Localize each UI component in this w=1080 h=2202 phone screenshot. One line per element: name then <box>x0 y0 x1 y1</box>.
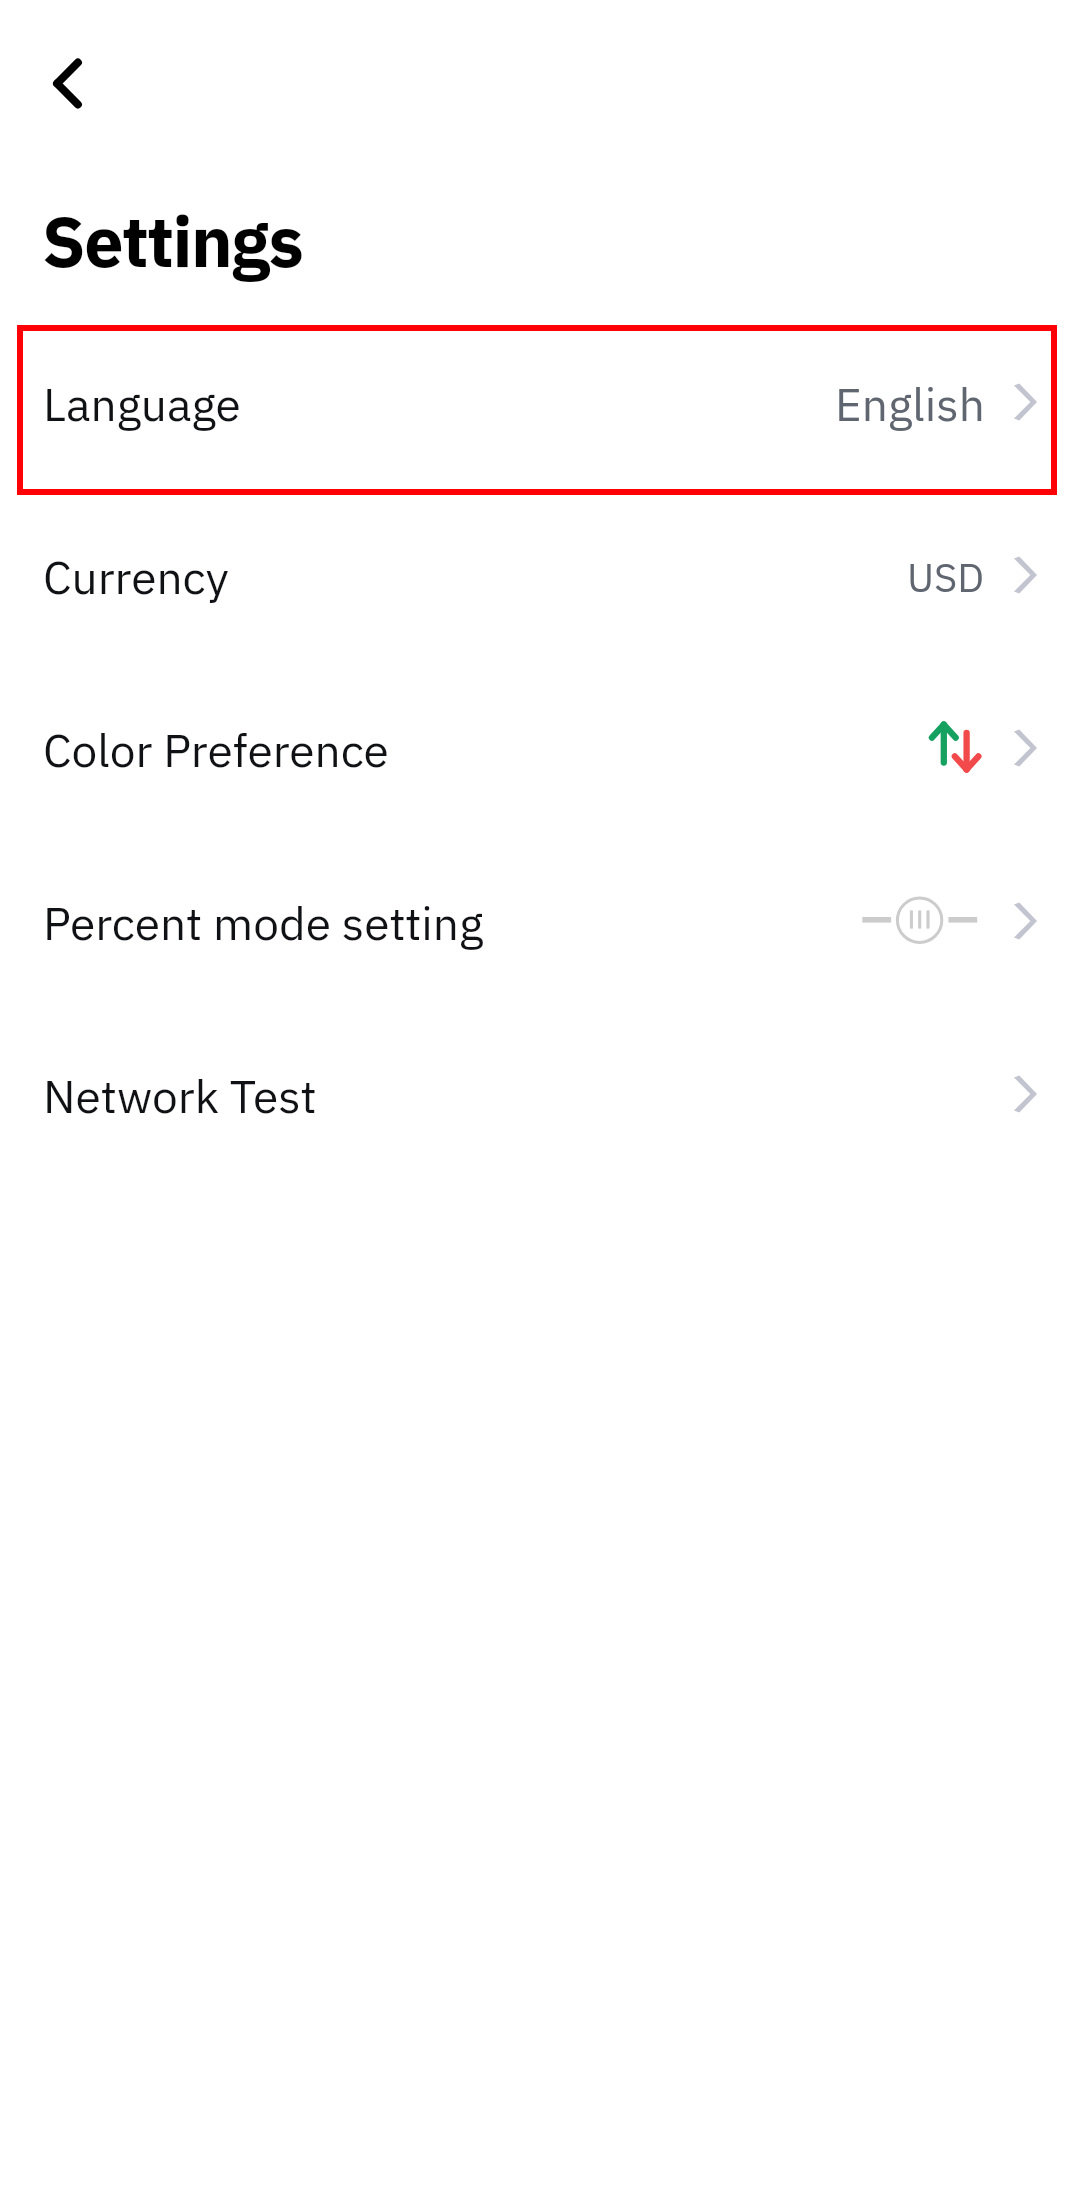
staticText: English <box>835 374 985 434</box>
button[interactable]: Percent mode setting <box>0 836 1080 1009</box>
button[interactable]: Network Test <box>0 1009 1080 1182</box>
staticText: Network Test <box>43 1066 317 1126</box>
staticText: USD <box>907 551 985 603</box>
staticText: Currency <box>43 547 229 607</box>
staticText: Color Preference <box>43 720 389 780</box>
button[interactable]: Color Preference <box>0 663 1080 836</box>
button[interactable]: Currency <box>0 490 1080 663</box>
button[interactable]: Back <box>21 37 114 130</box>
staticText: Settings <box>42 195 303 286</box>
button[interactable]: Language <box>0 317 1080 490</box>
staticText: Language <box>43 374 241 434</box>
staticText: Percent mode setting <box>43 893 484 953</box>
